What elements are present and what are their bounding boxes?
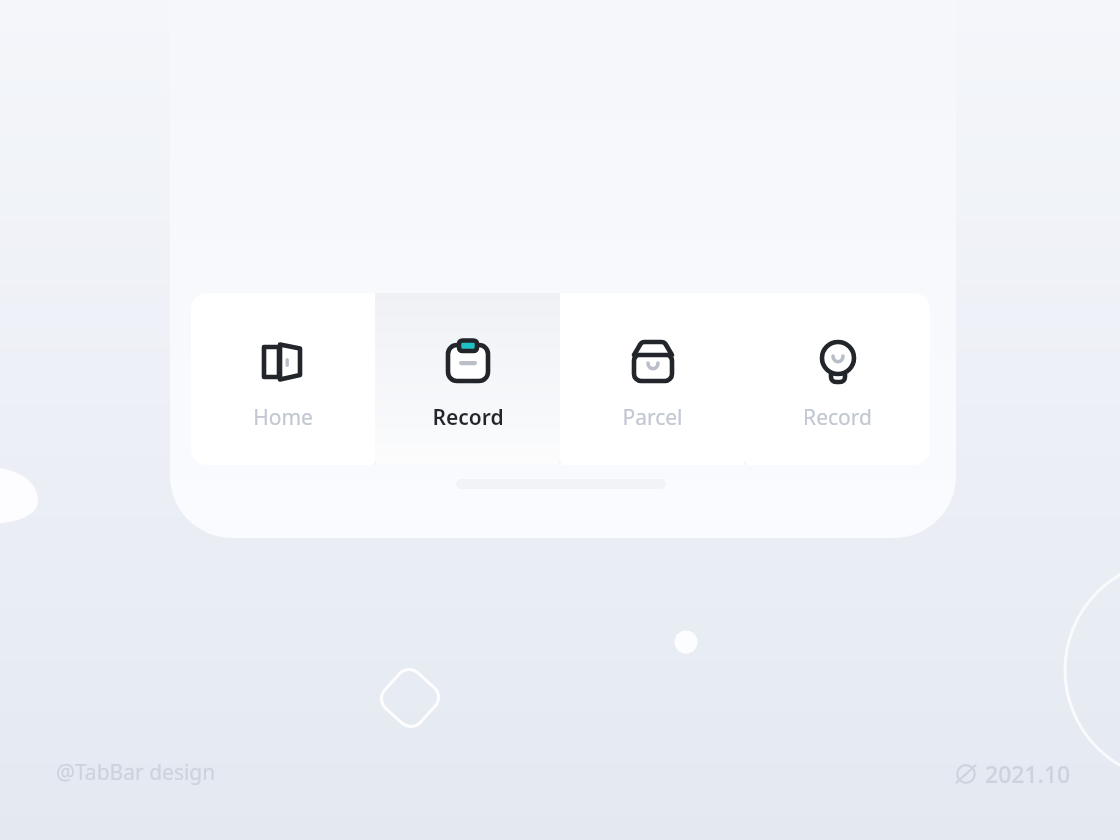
staticText: Record	[803, 403, 872, 432]
staticText: Parcel	[622, 403, 683, 432]
other: Record	[440, 333, 496, 389]
button[interactable]: Record	[375, 293, 560, 465]
staticText: @TabBar design	[56, 758, 216, 787]
staticText: Home	[253, 403, 313, 432]
staticText: 2021.10	[985, 758, 1071, 789]
other: Parcel	[625, 333, 681, 389]
button[interactable]: Parcel	[560, 293, 745, 465]
button[interactable]: Home	[191, 293, 375, 465]
staticText: Record	[432, 403, 504, 432]
other: Home	[255, 333, 311, 389]
button[interactable]: Record	[745, 293, 930, 465]
other: Record	[810, 333, 866, 389]
